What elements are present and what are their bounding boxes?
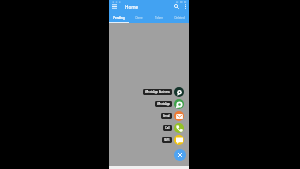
button[interactable]: More options xyxy=(181,0,189,13)
button[interactable]: Close menu xyxy=(174,149,186,161)
button[interactable]: Token xyxy=(149,13,169,23)
staticText: SMS xyxy=(164,138,170,142)
button[interactable]: Email xyxy=(161,111,184,121)
staticText: WhatsApp Business xyxy=(145,90,170,94)
staticText: Done xyxy=(135,16,143,20)
button[interactable]: Done xyxy=(129,13,149,23)
staticText: Deleted xyxy=(174,16,185,20)
staticText: Pending xyxy=(113,16,125,20)
staticText: Token xyxy=(155,16,163,20)
staticText: Home xyxy=(125,4,139,10)
button[interactable]: Deleted xyxy=(169,13,189,23)
button[interactable]: WhatsApp xyxy=(155,99,184,109)
button[interactable]: SMS xyxy=(162,135,184,145)
button[interactable]: Search xyxy=(171,0,181,13)
button[interactable]: Pending xyxy=(109,13,129,23)
button[interactable]: Menu xyxy=(109,0,120,13)
staticText: Email xyxy=(163,114,170,118)
button[interactable]: Call xyxy=(163,123,184,133)
staticText: Call xyxy=(165,126,170,130)
staticText: WhatsApp xyxy=(157,102,170,106)
button[interactable]: WhatsApp Business xyxy=(143,87,184,97)
